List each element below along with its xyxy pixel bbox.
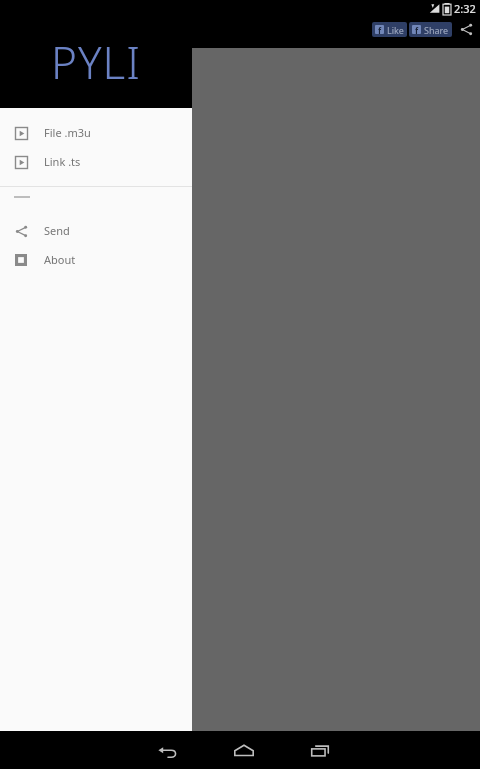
- staticText: f: [415, 25, 419, 34]
- button[interactable]: Share: [458, 21, 474, 37]
- button[interactable]: File .m3u: [0, 118, 192, 147]
- button[interactable]: Back: [140, 731, 196, 769]
- button[interactable]: About: [0, 245, 192, 274]
- staticText: File .m3u: [44, 125, 91, 140]
- staticText: Link .ts: [44, 154, 81, 169]
- button[interactable]: Home: [216, 731, 272, 769]
- button[interactable]: f: [372, 22, 407, 37]
- staticText: Send: [44, 223, 70, 238]
- button[interactable]: Link .ts: [0, 147, 192, 176]
- staticText: 2:32: [454, 1, 476, 16]
- staticText: Share: [424, 24, 449, 36]
- button[interactable]: f: [409, 22, 452, 37]
- staticText: PYLI: [51, 32, 141, 92]
- button[interactable]: Send: [0, 216, 192, 245]
- button[interactable]: Recent apps: [292, 731, 348, 769]
- staticText: f: [378, 25, 382, 34]
- staticText: About: [44, 252, 76, 267]
- staticText: Like: [387, 24, 404, 36]
